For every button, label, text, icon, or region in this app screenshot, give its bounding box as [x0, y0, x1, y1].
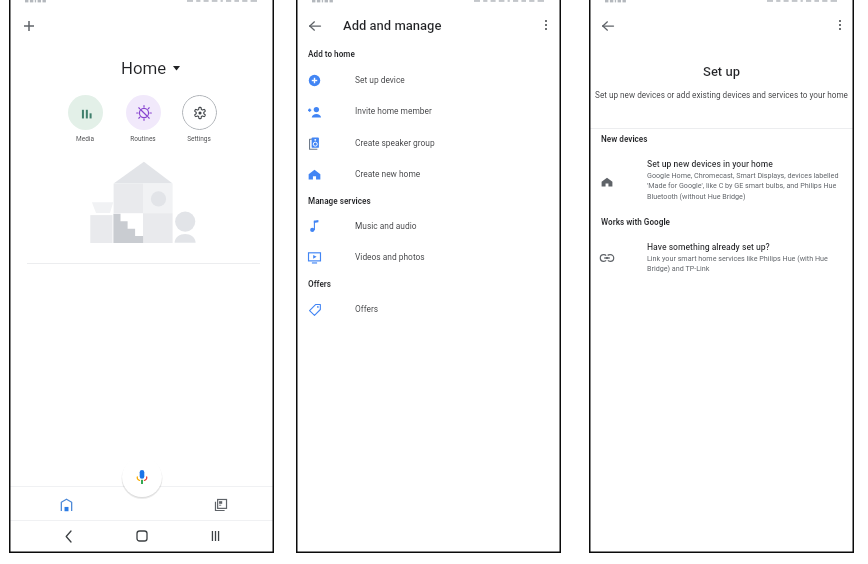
staticText: Manage services [308, 196, 371, 206]
button[interactable]: Recents [204, 525, 226, 547]
button[interactable]: Back [58, 525, 80, 547]
staticText: Media [65, 135, 105, 143]
staticText: Set up new devices or add existing devic… [590, 90, 853, 100]
staticText: Invite home member [355, 106, 432, 116]
staticText: New devices [601, 134, 648, 144]
button[interactable]: Feed tab [205, 489, 236, 520]
button[interactable]: Set up new devices in your home [589, 155, 854, 207]
button[interactable]: Have something already set up? [589, 238, 854, 280]
button[interactable]: Invite home member [296, 98, 561, 124]
button[interactable]: Home tab [51, 489, 82, 520]
button[interactable]: Routines [123, 95, 163, 143]
button[interactable]: Home button [131, 525, 153, 547]
button[interactable]: Add [15, 12, 42, 39]
staticText: Add and manage [343, 18, 442, 33]
staticText: Create speaker group [355, 138, 435, 148]
button[interactable]: Media [65, 95, 105, 143]
staticText: Have something already set up? [647, 242, 770, 252]
staticText: Music and audio [355, 221, 417, 231]
button[interactable]: More options [827, 12, 853, 38]
button[interactable]: Create speaker group [296, 130, 561, 156]
button[interactable]: Home [121, 58, 180, 78]
staticText: Home [121, 58, 167, 78]
button[interactable]: Videos and photos [296, 244, 561, 270]
staticText: Set up device [355, 75, 405, 85]
button[interactable]: Settings [179, 95, 219, 143]
staticText: Videos and photos [355, 252, 425, 262]
staticText: Works with Google [601, 217, 670, 227]
button[interactable]: Back [594, 12, 621, 39]
staticText: Google Home, Chromecast, Smart Displays,… [647, 171, 845, 201]
staticText: Add to home [308, 49, 355, 59]
staticText: Offers [355, 304, 379, 314]
button[interactable]: Offers [296, 296, 561, 322]
staticText: Link your smart home services like Phili… [647, 254, 845, 273]
button[interactable]: Google Assistant [122, 457, 162, 497]
staticText: Settings [179, 135, 219, 143]
staticText: Routines [123, 135, 163, 143]
staticText: Set up [589, 64, 854, 79]
button[interactable]: Back [301, 12, 328, 39]
button[interactable]: More options [533, 12, 559, 38]
staticText: Set up new devices in your home [647, 159, 773, 169]
staticText: Create new home [355, 169, 421, 179]
button[interactable]: Create new home [296, 161, 561, 187]
button[interactable]: Music and audio [296, 213, 561, 239]
staticText: Offers [308, 279, 332, 289]
button[interactable]: Set up device [296, 67, 561, 93]
